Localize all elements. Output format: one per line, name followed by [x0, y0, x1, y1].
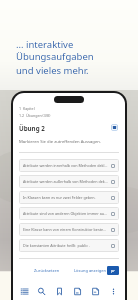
button[interactable]: Suche	[33, 283, 50, 300]
button[interactable]: Lesezeichen	[50, 283, 68, 300]
staticText: und vieles mehr.	[16, 64, 89, 77]
staticText: prüfen/Neu	[111, 268, 115, 273]
button[interactable]: Lösung anzeigen	[73, 267, 107, 274]
staticText: Eine Klasse kann von einem Konstruktor b…	[23, 227, 108, 232]
staticText: Attribute werden innerhalb von Methoden …	[23, 163, 108, 168]
staticText: Zurücksetzen	[34, 268, 60, 273]
staticText: Die konstanten Attribute heißt public .	[23, 243, 108, 248]
staticText: Attribute werden außerhalb von Methoden …	[23, 179, 108, 184]
staticText: Attribute sind von anderen Objekten imme…	[23, 211, 108, 216]
staticText: 1 Kapitel	[19, 106, 35, 111]
staticText: Lösung anzeigen	[74, 268, 106, 273]
button[interactable]: In Klassen kann es nur zwei Felder geben…	[19, 191, 119, 204]
button[interactable]: Eine Klasse kann von einem Konstruktor b…	[19, 223, 119, 236]
staticText: … interaktive Übungsaufgaben	[16, 38, 128, 63]
button[interactable]: Attribute werden außerhalb von Methoden …	[19, 175, 119, 188]
staticText: 1.2 Übungen (3/8)	[19, 113, 51, 118]
button[interactable]: Attribute werden innerhalb von Methoden …	[19, 159, 119, 172]
button[interactable]: prüfen/Neu	[107, 266, 119, 275]
button[interactable]: Lesezeichen	[110, 123, 119, 132]
button[interactable]: Inhalt	[16, 283, 33, 300]
staticText: In Klassen kann es nur zwei Felder geben…	[23, 195, 108, 200]
button[interactable]: Die konstanten Attribute heißt public .	[19, 239, 119, 252]
button[interactable]: Zurücksetzen	[33, 267, 61, 274]
staticText: Übung 2	[19, 124, 110, 132]
button[interactable]: Attribute sind von anderen Objekten imme…	[19, 207, 119, 220]
button[interactable]: Notizen	[68, 283, 86, 300]
button[interactable]: Mehr	[104, 283, 122, 300]
button[interactable]: Dokumente	[86, 283, 104, 300]
staticText: Markieren Sie die zutreffenden Aussagen.	[19, 139, 101, 145]
